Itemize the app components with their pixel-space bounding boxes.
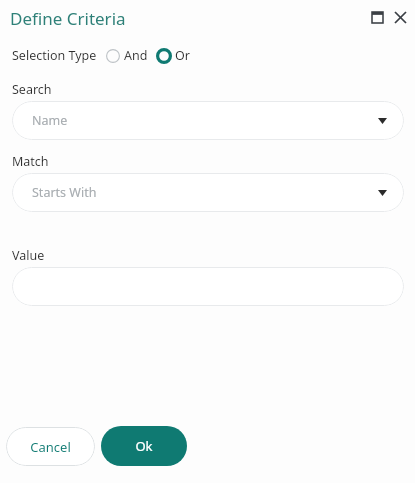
- button[interactable]: Starts With: [12, 173, 404, 212]
- button[interactable]: And: [105, 47, 148, 64]
- button[interactable]: Maximize: [366, 6, 388, 28]
- staticText: Cancel: [30, 438, 71, 456]
- staticText: Ok: [135, 437, 153, 455]
- button[interactable]: [12, 267, 404, 306]
- staticText: Value: [12, 247, 45, 264]
- button[interactable]: Close: [389, 6, 411, 28]
- staticText: Search: [12, 81, 52, 98]
- staticText: Selection Type: [12, 47, 97, 64]
- staticText: Starts With: [32, 184, 97, 201]
- staticText: Or: [175, 47, 190, 64]
- button[interactable]: Ok: [101, 426, 187, 466]
- button[interactable]: Name: [12, 101, 404, 140]
- button[interactable]: Or: [156, 47, 190, 64]
- button[interactable]: Cancel: [6, 427, 95, 466]
- staticText: Name: [32, 112, 68, 129]
- staticText: And: [124, 47, 148, 64]
- staticText: Match: [12, 153, 49, 170]
- staticText: Define Criteria: [10, 7, 126, 30]
